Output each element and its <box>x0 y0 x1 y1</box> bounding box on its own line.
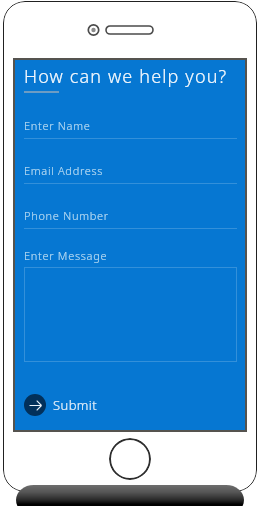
staticText: Enter Name <box>24 118 91 133</box>
button[interactable]: Enter Message <box>24 248 108 263</box>
button[interactable]: Phone Number <box>24 208 237 223</box>
staticText: How can we help you? <box>24 64 228 89</box>
staticText: Phone Number <box>24 208 109 223</box>
button[interactable]: Enter Name <box>24 118 237 133</box>
button[interactable]: Home <box>109 438 151 480</box>
button[interactable]: Email Address <box>24 163 237 178</box>
staticText: Email Address <box>24 163 104 178</box>
staticText: Enter Message <box>24 248 108 263</box>
button[interactable] <box>24 267 237 362</box>
button[interactable]: Submit <box>24 394 98 416</box>
staticText: Submit <box>53 396 98 414</box>
